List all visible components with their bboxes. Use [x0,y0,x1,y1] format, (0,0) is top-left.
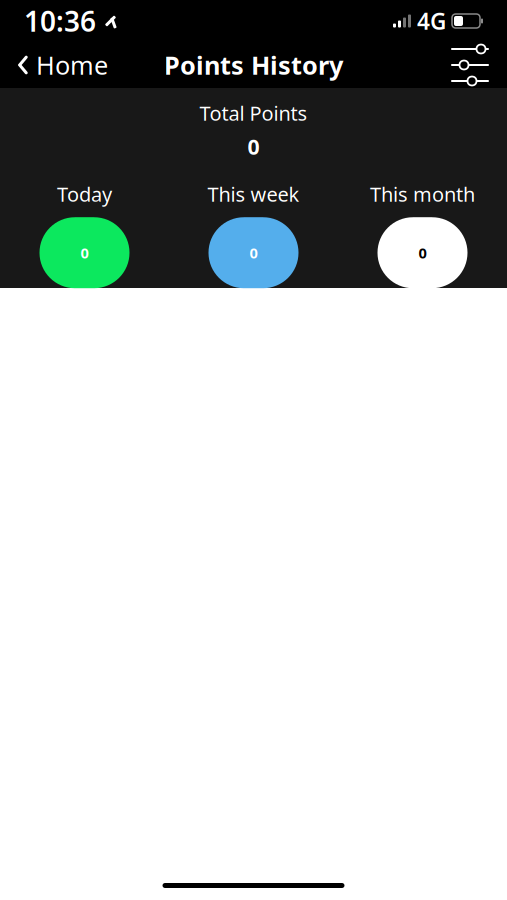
button[interactable]: Home [0,40,108,90]
button[interactable]: Filter [451,43,507,87]
staticText: Points History [164,48,343,82]
staticText: 0 [247,132,259,161]
staticText: 0 [249,243,257,262]
staticText: Today [57,181,112,207]
staticText: Home [36,48,108,82]
staticText: 10:36 [24,2,96,40]
staticText: 4G [417,6,446,36]
staticText: This month [370,181,475,207]
staticText: 0 [418,243,426,262]
staticText: This week [207,181,299,207]
staticText: Total Points [199,100,307,126]
staticText: 0 [80,243,88,262]
